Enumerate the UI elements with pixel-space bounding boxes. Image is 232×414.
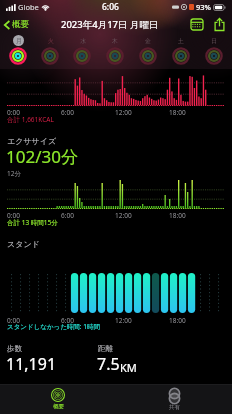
staticText: 12:00 xyxy=(115,211,132,220)
button[interactable]: Calendar xyxy=(188,17,206,32)
button[interactable]: 金 xyxy=(131,34,164,68)
staticText: 0:00 xyxy=(7,211,20,220)
staticText: 0:00 xyxy=(7,108,20,117)
staticText: 0:00 xyxy=(7,316,20,325)
staticText: 6:00 xyxy=(61,211,74,220)
button[interactable]: 土 xyxy=(164,34,197,68)
staticText: 金 xyxy=(145,37,151,45)
staticText: 102/30分 xyxy=(6,145,78,168)
staticText: 土 xyxy=(178,37,184,45)
button[interactable]: 概要 xyxy=(0,17,33,32)
staticText: 18:00 xyxy=(169,108,186,117)
staticText: 共有 xyxy=(169,404,180,411)
staticText: Globe xyxy=(18,2,39,12)
button[interactable]: 概要 xyxy=(0,384,116,414)
staticText: 93% xyxy=(196,2,211,12)
button[interactable]: 木 xyxy=(98,34,131,68)
staticText: スタンドしなかった時間: 1時間 xyxy=(7,322,101,331)
staticText: 水 xyxy=(80,37,86,45)
button[interactable]: Share xyxy=(211,17,228,32)
button[interactable]: 日 xyxy=(197,34,230,68)
staticText: 12:00 xyxy=(115,108,132,117)
staticText: 12分 xyxy=(7,169,21,178)
staticText: スタンド xyxy=(7,239,40,249)
staticText: 概要 xyxy=(12,19,29,30)
staticText: KM xyxy=(120,360,137,375)
staticText: 木 xyxy=(112,37,118,45)
staticText: エクササイズ xyxy=(7,136,57,146)
button[interactable]: 月 xyxy=(2,34,34,68)
staticText: 月 xyxy=(16,37,22,45)
staticText: 合計 13 時間15分 xyxy=(7,218,58,227)
staticText: 6:00 xyxy=(61,316,74,325)
staticText: 18:00 xyxy=(169,211,186,220)
button[interactable]: 共有 xyxy=(116,384,232,414)
staticText: 日 xyxy=(211,37,217,45)
staticText: 距離 xyxy=(98,344,113,353)
staticText: 11,191 xyxy=(6,353,57,375)
button[interactable]: 火 xyxy=(34,34,66,68)
staticText: 7.5 xyxy=(97,353,120,375)
staticText: 12:00 xyxy=(115,316,132,325)
staticText: 火 xyxy=(48,37,54,45)
button[interactable]: 水 xyxy=(66,34,98,68)
staticText: 6:00 xyxy=(61,108,74,117)
staticText: 概要 xyxy=(53,403,64,410)
staticText: 2023年4月17日 月曜日 xyxy=(61,18,159,31)
staticText: 6:06 xyxy=(102,1,119,13)
staticText: 歩数 xyxy=(7,344,22,353)
staticText: 18:00 xyxy=(169,316,186,325)
staticText: 合計 1,661KCAL xyxy=(7,115,54,124)
